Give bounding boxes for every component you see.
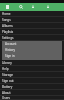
button[interactable]: Settings [0,35,64,41]
button[interactable]: Search [18,4,24,10]
button[interactable]: Battery [0,84,64,90]
staticText: Playlists [2,30,14,34]
staticText: History [5,48,16,52]
staticText: Settings [2,36,14,40]
staticText: Sign out [2,79,14,83]
button[interactable]: Account [45,4,51,10]
button[interactable]: Menu [4,4,10,10]
staticText: Account [5,42,17,46]
button[interactable]: Home [0,11,64,17]
button[interactable]: Playlists [0,29,64,35]
staticText: Users [2,96,10,100]
button[interactable]: Account [2,41,62,47]
button[interactable]: Sign out [0,78,64,84]
staticText: Home [2,12,11,16]
staticText: Songs [2,18,11,22]
button[interactable]: History [2,47,62,53]
staticText: Help [2,67,9,71]
button[interactable]: Storage [0,72,64,78]
button[interactable]: Help [0,66,64,72]
button[interactable]: Users [0,96,64,100]
staticText: Storage [2,73,13,77]
button[interactable]: Sign in [2,53,62,59]
staticText: Battery [2,85,13,89]
staticText: Sign in [5,54,15,58]
button[interactable]: Albums [0,23,64,29]
button[interactable]: About [0,90,64,96]
staticText: Albums [2,24,13,28]
staticText: About [2,91,11,95]
staticText: Library [2,61,12,65]
button[interactable]: Account [30,4,36,10]
button[interactable]: Library [0,60,64,66]
button[interactable]: Songs [0,17,64,23]
